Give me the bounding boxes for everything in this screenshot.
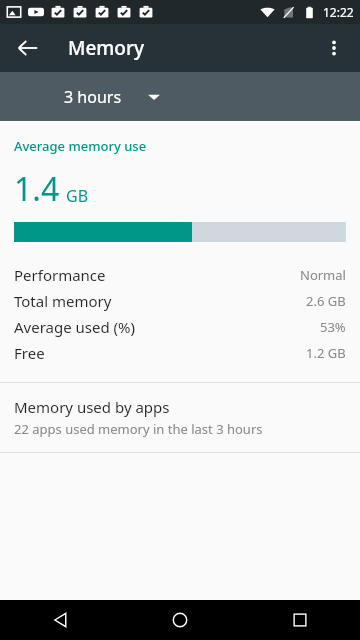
button[interactable]: 3 hours bbox=[52, 76, 160, 118]
button[interactable]: Performance bbox=[0, 262, 360, 288]
staticText: 12:22 bbox=[323, 4, 354, 20]
staticText: Total memory bbox=[14, 291, 112, 311]
button[interactable]: More options bbox=[314, 28, 354, 68]
button[interactable]: Back bbox=[8, 28, 48, 68]
staticText: Performance bbox=[14, 265, 106, 285]
staticText: Memory used by apps bbox=[14, 397, 170, 417]
staticText: Free bbox=[14, 343, 45, 363]
staticText: GB bbox=[66, 185, 89, 207]
button[interactable]: Free bbox=[0, 340, 360, 366]
staticText: 1.4 bbox=[14, 167, 60, 211]
button[interactable]: Home bbox=[120, 600, 240, 640]
button[interactable]: Recent apps bbox=[240, 600, 360, 640]
button[interactable]: Memory used by apps bbox=[0, 383, 360, 452]
staticText: Average memory use bbox=[14, 137, 147, 155]
staticText: 22 apps used memory in the last 3 hours bbox=[14, 420, 263, 438]
staticText: 3 hours bbox=[64, 86, 122, 108]
button[interactable]: Average used (%) bbox=[0, 314, 360, 340]
button[interactable]: Total memory bbox=[0, 288, 360, 314]
button[interactable]: Back bbox=[0, 600, 120, 640]
staticText: 1.2 GB bbox=[306, 344, 346, 362]
staticText: 53% bbox=[320, 318, 346, 336]
staticText: 2.6 GB bbox=[306, 292, 346, 310]
staticText: Memory bbox=[68, 35, 145, 61]
staticText: Average used (%) bbox=[14, 317, 136, 337]
staticText: Normal bbox=[300, 266, 346, 284]
